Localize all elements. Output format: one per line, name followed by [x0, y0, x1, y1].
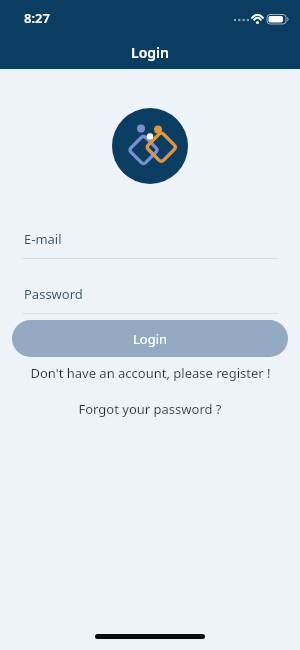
button[interactable]: Login [12, 320, 288, 357]
button[interactable]: Don't have an account, please register ! [0, 364, 300, 382]
staticText: E-mail [24, 230, 62, 248]
staticText: Forgot your password ? [78, 400, 222, 418]
button[interactable]: Password [0, 285, 300, 314]
button[interactable]: Forgot your password ? [0, 400, 300, 418]
button[interactable]: E-mail [0, 230, 300, 259]
staticText: Login [131, 43, 169, 62]
staticText: Don't have an account, please register ! [30, 364, 271, 382]
staticText: Login [133, 330, 168, 348]
staticText: 8:27 [24, 9, 50, 27]
staticText: Password [24, 285, 83, 303]
